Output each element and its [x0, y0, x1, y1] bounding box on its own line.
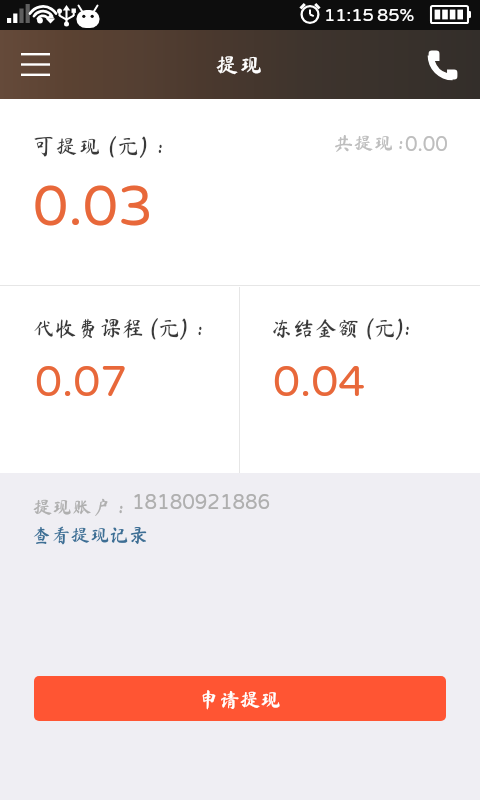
- staticText: 代收费课程 (元)：: [33, 318, 212, 339]
- staticText: 申请提现: [199, 689, 281, 709]
- button[interactable]: Menu: [5, 30, 65, 99]
- staticText: 0.03: [33, 174, 154, 241]
- staticText: 0.07: [35, 357, 128, 409]
- staticText: 18180921886: [132, 491, 271, 515]
- button[interactable]: Call: [413, 30, 473, 99]
- button[interactable]: 查看提现记录: [32, 525, 149, 544]
- staticText: 0.04: [273, 357, 366, 409]
- staticText: 0.00: [405, 133, 448, 157]
- staticText: 提现: [216, 54, 265, 76]
- staticText: 冻结金额 (元):: [271, 318, 412, 339]
- button[interactable]: 代收费课程 (元)：: [0, 286, 239, 473]
- staticText: 可提现 (元)：: [33, 136, 173, 157]
- button[interactable]: 申请提现: [34, 676, 446, 721]
- staticText: 查看提现记录: [32, 525, 149, 544]
- button[interactable]: 冻结金额 (元):: [240, 286, 480, 473]
- staticText: 85%: [377, 4, 415, 26]
- staticText: 提现账户：: [33, 497, 132, 516]
- staticText: 11:15: [324, 4, 374, 26]
- staticText: 共提现 :: [334, 133, 405, 152]
